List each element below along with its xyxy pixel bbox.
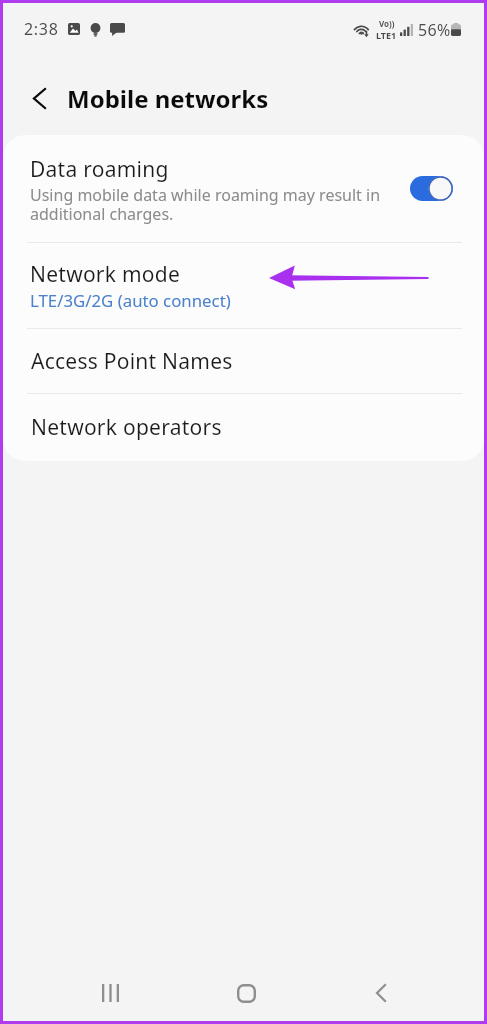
staticText: Network operators	[31, 413, 222, 442]
staticText: LTE1	[376, 29, 397, 41]
staticText: Network mode	[30, 260, 181, 289]
button[interactable]: Back	[22, 81, 56, 115]
button[interactable]: Data roaming toggle	[410, 176, 453, 201]
button[interactable]: Home	[219, 966, 273, 1020]
staticText: 56%	[418, 19, 451, 41]
button[interactable]: Network operators	[3, 394, 484, 461]
staticText: Using mobile data while roaming may resu…	[30, 184, 385, 225]
button[interactable]: Data roaming	[3, 135, 484, 242]
staticText: 2:38	[24, 18, 59, 40]
button[interactable]: Access Point Names	[3, 329, 484, 393]
button[interactable]: Back	[354, 966, 408, 1020]
staticText: LTE/3G/2G (auto connect)	[30, 289, 231, 312]
button[interactable]: Network mode	[3, 243, 484, 328]
staticText: Access Point Names	[31, 347, 233, 376]
staticText: Mobile networks	[67, 82, 269, 115]
staticText: Vo))	[379, 18, 395, 29]
staticText: Data roaming	[30, 155, 169, 184]
button[interactable]: Recents	[83, 966, 137, 1020]
